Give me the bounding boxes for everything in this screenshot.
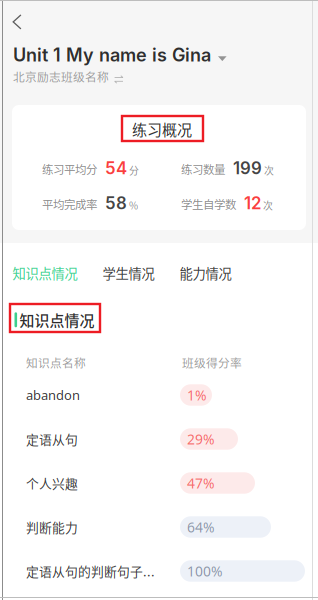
staticText: 64% [187, 518, 215, 536]
staticText: abandon [26, 386, 80, 404]
staticText: Unit 1 My name is Gina [13, 44, 211, 66]
staticText: 知识点名称 [26, 354, 86, 371]
staticText: 个人兴趣 [26, 474, 78, 492]
staticText: 分 [129, 163, 139, 177]
staticText: 学生自学数 [181, 196, 236, 212]
staticText: 定语从句的判断句子... [26, 562, 155, 580]
staticText: 北京励志班级名称 [13, 68, 109, 85]
staticText: 能力情况 [179, 263, 231, 283]
staticText: 知识点情况 [20, 309, 95, 331]
staticText: 判断能力 [26, 518, 78, 536]
staticText: 1% [187, 386, 207, 404]
staticText: 班级得分率 [182, 354, 242, 371]
staticText: 次 [264, 163, 274, 177]
staticText: 学生情况 [102, 263, 154, 283]
staticText: 定语从句 [26, 430, 78, 448]
button[interactable]: Back [12, 9, 44, 35]
staticText: 知识点情况 [12, 263, 77, 283]
staticText: 次 [263, 198, 273, 212]
staticText: 12 [244, 193, 261, 213]
staticText: 练习平均分 [42, 161, 97, 177]
staticText: 54 [105, 158, 127, 178]
staticText: 练习数量 [181, 161, 225, 177]
button[interactable]: 知识点情况 [0, 256, 90, 290]
staticText: 平均完成率 [42, 196, 97, 212]
button[interactable]: 能力情况 [167, 256, 244, 290]
staticText: 练习概况 [132, 118, 192, 140]
button[interactable]: 北京励志班级名称 [13, 68, 124, 85]
staticText: % [129, 198, 138, 212]
staticText: 47% [187, 474, 215, 492]
staticText: 58 [105, 193, 127, 213]
staticText: 199 [233, 158, 262, 178]
button[interactable]: Unit 1 My name is Gina [13, 44, 227, 66]
staticText: 29% [187, 430, 215, 448]
staticText: 100% [187, 562, 223, 580]
button[interactable]: 学生情况 [90, 256, 167, 290]
